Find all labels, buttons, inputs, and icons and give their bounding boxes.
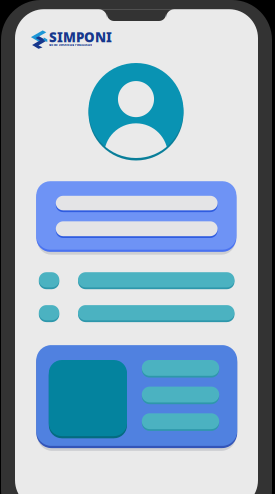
- staticText: SIMPONI: [49, 28, 112, 46]
- staticText: SISTEM INFORMASI PENDIDIKAN: [49, 43, 92, 47]
- button[interactable]: SIMPONI: [30, 30, 112, 49]
